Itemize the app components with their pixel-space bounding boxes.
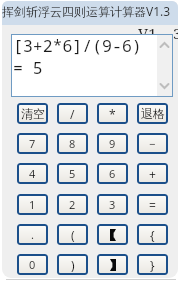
staticText: ( (71, 227, 75, 243)
staticText: 1 (29, 197, 36, 212)
button[interactable]: 退格 (137, 103, 168, 124)
staticText: { (150, 227, 155, 243)
button[interactable]: ) (57, 254, 88, 275)
button[interactable]: ( (57, 224, 88, 245)
staticText: = 5 (13, 56, 43, 78)
staticText: 3 (173, 23, 178, 43)
button[interactable]: 9 (97, 133, 128, 154)
staticText: 挥剑斩浮云四则运算计算器V1.3 (2, 3, 171, 19)
button[interactable]: 8 (57, 133, 88, 154)
staticText: = (149, 197, 156, 213)
staticText: ) (71, 257, 75, 273)
button[interactable]: Scroll (157, 34, 172, 97)
staticText: V1 (138, 23, 157, 43)
staticText: 6 (109, 166, 116, 181)
button[interactable]: = (137, 194, 168, 215)
button[interactable] (97, 254, 128, 275)
button[interactable]: { (137, 224, 168, 245)
button[interactable]: Expression (11, 34, 173, 97)
staticText: 2 (69, 197, 76, 212)
staticText: 7 (29, 136, 36, 151)
button[interactable]: * (97, 103, 128, 124)
button[interactable]: 5 (57, 163, 88, 184)
button[interactable]: 6 (97, 163, 128, 184)
button[interactable]: − (137, 133, 168, 154)
staticText: 清空 (21, 106, 45, 121)
button[interactable]: 清空 (17, 103, 48, 124)
staticText: 3 (109, 197, 116, 212)
button[interactable]: 1 (17, 194, 48, 215)
button[interactable]: 3 (97, 194, 128, 215)
button[interactable]: 7 (17, 133, 48, 154)
staticText: 8 (69, 136, 76, 151)
staticText: 5 (69, 166, 76, 181)
staticText: . (31, 227, 34, 242)
button[interactable]: } (137, 254, 168, 275)
button[interactable]: . (17, 224, 48, 245)
staticText: 退格 (141, 106, 165, 121)
staticText: − (149, 136, 156, 151)
staticText: 4 (29, 166, 36, 181)
button[interactable] (97, 224, 128, 245)
button[interactable]: + (137, 163, 168, 184)
staticText: 0 (29, 257, 36, 272)
staticText: [3+2*6]/(9-6) (13, 34, 142, 56)
staticText: + (149, 166, 156, 182)
button[interactable]: 4 (17, 163, 48, 184)
button[interactable]: 0 (17, 254, 48, 275)
button[interactable]: 2 (57, 194, 88, 215)
staticText: * (109, 106, 116, 122)
staticText: / (70, 106, 75, 122)
staticText: 9 (109, 136, 116, 151)
staticText: } (150, 257, 155, 273)
button[interactable]: / (57, 103, 88, 124)
